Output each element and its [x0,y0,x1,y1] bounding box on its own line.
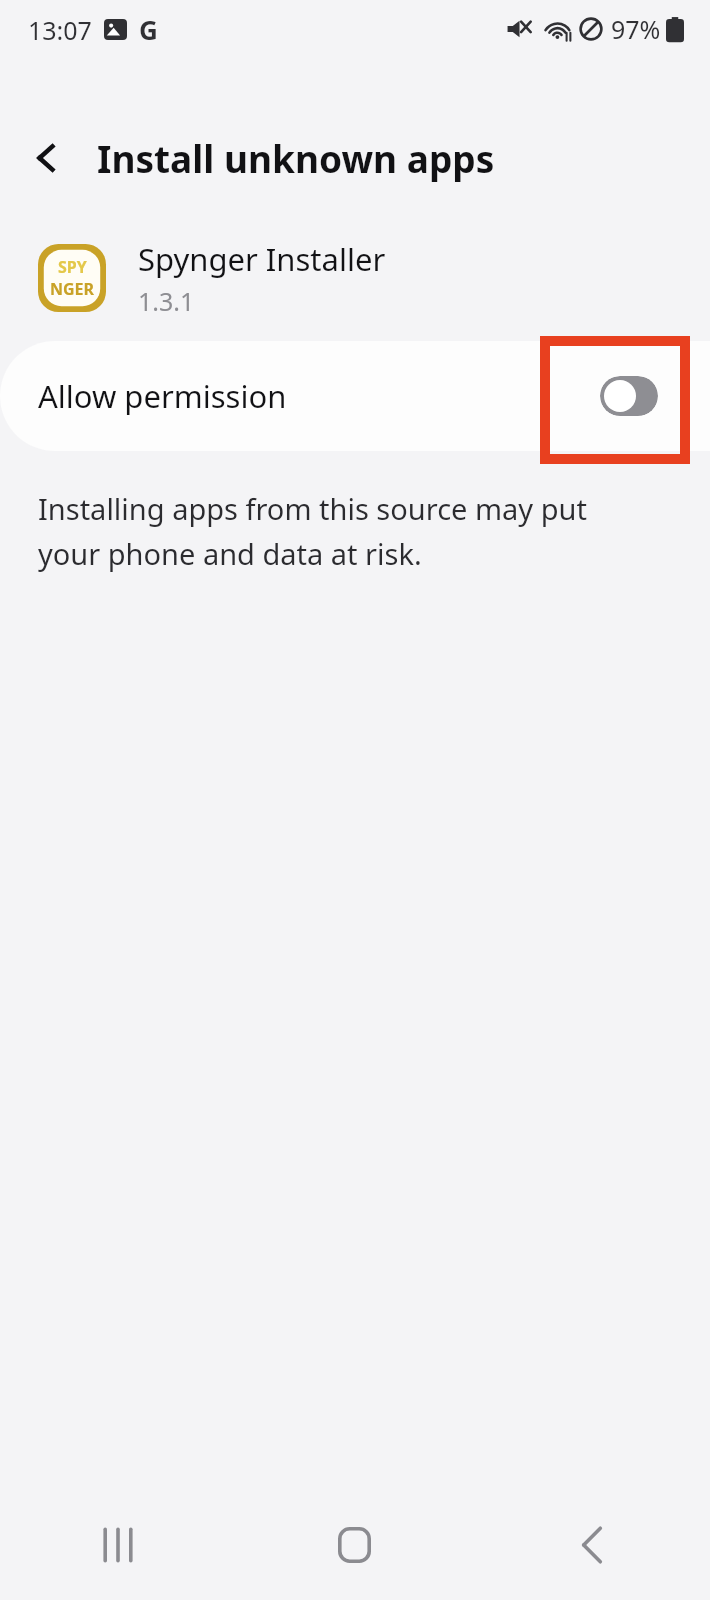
button[interactable]: Home [236,1490,473,1600]
button[interactable]: Recent apps [0,1490,236,1600]
button[interactable]: Allow permission toggle [600,376,658,416]
staticText: Allow permission [38,375,287,417]
staticText: 1.3.1 [138,284,195,318]
staticText: Spynger Installer [138,238,386,280]
staticText: NGER [50,278,95,300]
staticText: 13:07 [28,13,92,47]
button[interactable]: Allow permission [0,341,710,451]
button[interactable]: Back [473,1490,710,1600]
staticText: G [139,12,158,47]
staticText: Install unknown apps [97,133,495,183]
button[interactable]: Back [14,125,80,191]
staticText: 97% [611,12,661,46]
staticText: SPY [58,256,87,278]
staticText: Installing apps from this source may put… [38,489,630,574]
